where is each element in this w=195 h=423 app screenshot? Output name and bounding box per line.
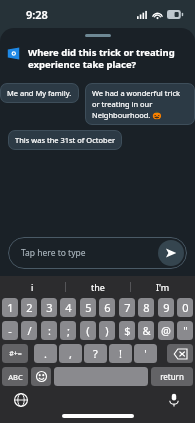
- staticText: ,: [69, 346, 72, 361]
- button[interactable]: ): [99, 321, 115, 340]
- button[interactable]: This was the 31st of October: [8, 130, 122, 150]
- staticText: .: [44, 346, 47, 361]
- button[interactable]: :: [41, 321, 57, 340]
- staticText: (: [86, 323, 90, 338]
- staticText: #+=: [9, 349, 22, 359]
- button[interactable]: 0: [177, 298, 193, 317]
- button[interactable]: i: [0, 276, 65, 298]
- staticText: :: [48, 323, 51, 338]
- button[interactable]: ': [134, 344, 157, 363]
- staticText: 2: [26, 300, 33, 315]
- button[interactable]: Change keyboard: [14, 393, 28, 407]
- staticText: i: [31, 281, 34, 293]
- staticText: 9:28: [26, 7, 48, 22]
- button[interactable]: the: [66, 276, 130, 298]
- button[interactable]: Backspace: [167, 344, 193, 363]
- button[interactable]: -: [2, 321, 18, 340]
- staticText: This was the 31st of October: [15, 135, 115, 145]
- button[interactable]: /: [21, 321, 37, 340]
- button[interactable]: #+=: [2, 344, 28, 363]
- button[interactable]: return: [151, 367, 193, 386]
- button[interactable]: I'm: [131, 276, 195, 298]
- staticText: Me and My family.: [7, 88, 72, 98]
- button[interactable]: !: [109, 344, 132, 363]
- staticText: ": [183, 323, 188, 338]
- button[interactable]: &: [138, 321, 154, 340]
- staticText: Tap here to type: [21, 247, 86, 259]
- button[interactable]: ?: [84, 344, 107, 363]
- staticText: Where did this trick or treating experie…: [28, 46, 185, 71]
- staticText: ;: [67, 323, 70, 338]
- staticText: 9: [163, 300, 170, 315]
- button[interactable]: 2: [21, 298, 37, 317]
- staticText: ABC: [8, 372, 23, 382]
- staticText: the: [91, 281, 105, 293]
- button[interactable]: 8: [138, 298, 154, 317]
- button[interactable]: ": [177, 321, 193, 340]
- button[interactable]: 7: [119, 298, 135, 317]
- staticText: !: [119, 346, 122, 361]
- staticText: 6: [104, 300, 111, 315]
- button[interactable]: .: [34, 344, 57, 363]
- staticText: @: [161, 323, 171, 338]
- button[interactable]: 1: [2, 298, 18, 317]
- button[interactable]: We had a wonderful trick or treating in …: [85, 83, 195, 125]
- staticText: 0: [182, 300, 189, 315]
- button[interactable]: 5: [80, 298, 96, 317]
- button[interactable]: Tap here to type: [8, 237, 187, 269]
- button[interactable]: 3: [41, 298, 57, 317]
- staticText: /: [27, 323, 32, 338]
- button[interactable]: 6: [99, 298, 115, 317]
- button[interactable]: Me and My family.: [0, 83, 79, 103]
- staticText: ): [105, 323, 109, 338]
- staticText: 1: [7, 300, 14, 315]
- staticText: We had a wonderful trick or treating in …: [92, 88, 188, 120]
- staticText: return: [160, 371, 184, 382]
- button[interactable]: ;: [60, 321, 76, 340]
- staticText: ': [144, 346, 147, 361]
- button[interactable]: @: [158, 321, 174, 340]
- staticText: &: [142, 323, 151, 338]
- staticText: $: [124, 323, 131, 338]
- button[interactable]: 4: [60, 298, 76, 317]
- button[interactable]: ABC: [2, 367, 28, 386]
- staticText: 8: [143, 300, 150, 315]
- button[interactable]: Send: [158, 240, 184, 266]
- button[interactable]: Space: [54, 367, 148, 386]
- staticText: ?: [93, 346, 98, 361]
- staticText: -: [8, 323, 12, 338]
- button[interactable]: (: [80, 321, 96, 340]
- staticText: 4: [65, 300, 72, 315]
- button[interactable]: ,: [59, 344, 82, 363]
- staticText: I'm: [156, 281, 170, 293]
- staticText: 7: [124, 300, 131, 315]
- button[interactable]: 9: [158, 298, 174, 317]
- staticText: 3: [46, 300, 53, 315]
- staticText: 5: [85, 300, 92, 315]
- button[interactable]: Dictation: [167, 393, 181, 407]
- button[interactable]: $: [119, 321, 135, 340]
- button[interactable]: Emoji: [31, 367, 51, 386]
